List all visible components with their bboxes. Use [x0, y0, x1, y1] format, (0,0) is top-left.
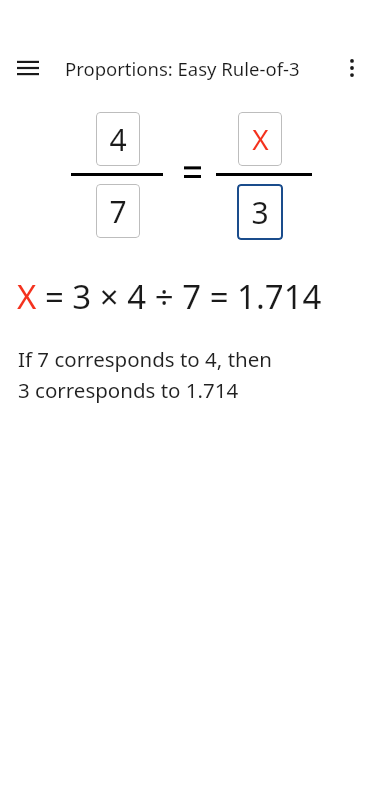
staticText: 7: [109, 191, 127, 232]
button[interactable]: More options: [330, 46, 374, 90]
staticText: 3: [251, 192, 269, 233]
button[interactable]: 4: [96, 112, 140, 166]
staticText: If 7 corresponds to 4, then 3 correspond…: [18, 345, 272, 404]
staticText: 4: [109, 119, 127, 160]
staticText: X = 3 × 4 ÷ 7 = 1.714: [17, 274, 322, 319]
staticText: Proportions: Easy Rule-of-3: [65, 56, 300, 81]
button[interactable]: Open navigation menu: [6, 46, 50, 90]
staticText: X: [252, 120, 269, 158]
button[interactable]: 7: [96, 184, 140, 238]
button[interactable]: X: [238, 112, 282, 166]
button[interactable]: 3: [237, 184, 283, 240]
